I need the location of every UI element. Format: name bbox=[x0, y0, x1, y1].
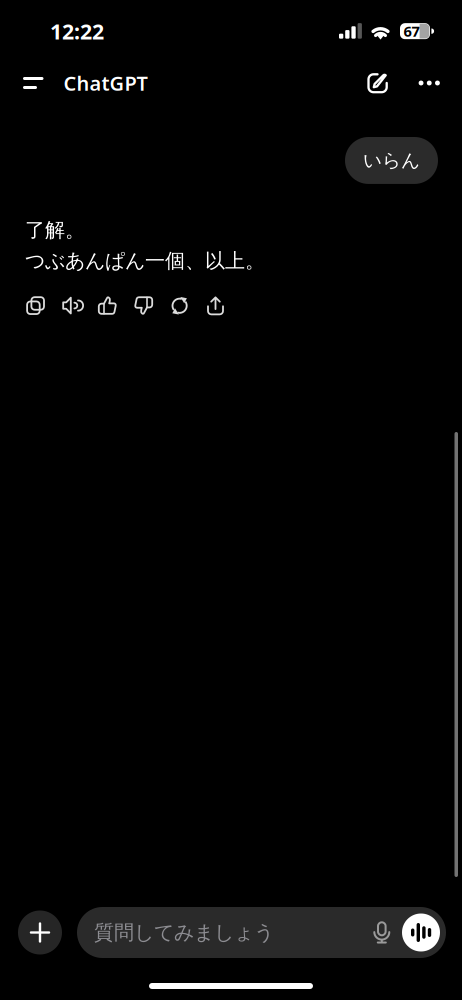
staticText: 67 bbox=[403, 21, 419, 41]
staticText: 質問してみましょう bbox=[94, 920, 274, 945]
button[interactable]: Add attachment bbox=[18, 910, 62, 954]
button[interactable]: 質問してみましょう bbox=[77, 907, 446, 958]
staticText: いらん bbox=[363, 149, 420, 172]
button[interactable]: Sidebar bbox=[0, 60, 52, 106]
button[interactable]: Regenerate bbox=[170, 296, 189, 315]
button[interactable]: Copy bbox=[26, 296, 45, 315]
staticText: ChatGPT bbox=[63, 70, 147, 96]
button[interactable]: Share bbox=[206, 296, 225, 315]
button[interactable]: More options bbox=[407, 60, 462, 106]
staticText: 12:22 bbox=[50, 17, 104, 45]
button[interactable]: New chat bbox=[353, 60, 407, 106]
button[interactable]: Read aloud bbox=[62, 296, 83, 315]
staticText: 了解。 bbox=[25, 218, 85, 242]
staticText: つぶあんぱん一個、以上。 bbox=[25, 248, 265, 273]
button[interactable]: Bad response bbox=[134, 296, 153, 315]
button[interactable]: ChatGPT bbox=[52, 60, 158, 106]
button[interactable]: Good response bbox=[98, 296, 117, 315]
